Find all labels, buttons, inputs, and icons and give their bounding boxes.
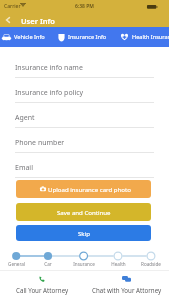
staticText: Upload insurance card photo [48, 185, 131, 193]
staticText: Insurance Info [68, 33, 107, 41]
staticText: Insurance [73, 261, 95, 267]
button[interactable]: Upload insurance card photo [16, 180, 151, 198]
staticText: Insurance info name [15, 63, 83, 73]
staticText: Agent [15, 113, 35, 123]
staticText: Carrier [4, 3, 21, 10]
staticText: Car [44, 261, 52, 267]
button[interactable]: Back [2, 14, 14, 26]
button[interactable]: Insurance Info [58, 27, 107, 47]
staticText: Health [111, 261, 126, 267]
button[interactable]: Insurance info policy [0, 78, 169, 103]
staticText: Call Your Attorney [16, 286, 69, 294]
staticText: Insurance info policy [15, 88, 84, 98]
button[interactable]: Chat with Your Attorney [84, 271, 169, 300]
staticText: Skip [78, 229, 90, 237]
staticText: 6:38 PM [75, 3, 94, 10]
staticText: General [8, 261, 25, 267]
button[interactable]: Skip [16, 225, 151, 241]
staticText: Email [15, 163, 33, 173]
button[interactable]: Save and Continue [16, 203, 151, 221]
button[interactable]: Phone number [0, 128, 169, 153]
staticText: Health Insurance [132, 33, 169, 41]
staticText: Chat with Your Attorney [92, 286, 162, 294]
button[interactable]: Health Insurance [120, 27, 169, 47]
staticText: User Info [21, 16, 55, 26]
staticText: Save and Continue [57, 208, 111, 216]
button[interactable]: Insurance info name [0, 53, 169, 78]
button[interactable]: Email [0, 153, 169, 178]
button[interactable]: Vehicle Info [2, 27, 45, 47]
staticText: Roadside [141, 261, 161, 267]
staticText: Phone number [15, 138, 65, 148]
button[interactable]: Agent [0, 103, 169, 128]
button[interactable]: Call Your Attorney [0, 271, 84, 300]
staticText: Vehicle Info [14, 33, 45, 41]
